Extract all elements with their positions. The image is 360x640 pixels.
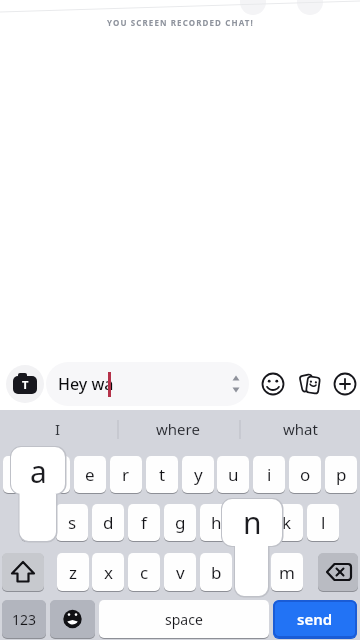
button[interactable]: i <box>253 456 285 493</box>
staticText: z <box>69 561 77 584</box>
button[interactable]: f <box>128 504 160 541</box>
button[interactable]: m <box>271 553 303 591</box>
button[interactable]: p <box>325 456 357 493</box>
button[interactable]: z <box>57 553 89 591</box>
staticText: I <box>55 419 61 439</box>
staticText: p <box>336 463 347 486</box>
button[interactable]: send <box>273 600 357 638</box>
staticText: what <box>283 419 318 439</box>
button[interactable]: g <box>164 504 196 541</box>
staticText: 123 <box>12 610 37 629</box>
staticText: j <box>249 511 254 534</box>
button[interactable]: d <box>92 504 124 541</box>
button[interactable]: what <box>250 412 350 446</box>
button[interactable] <box>331 370 359 398</box>
staticText: o <box>300 463 311 486</box>
button[interactable]: x <box>92 553 124 591</box>
button[interactable]: space <box>99 600 269 638</box>
button[interactable]: s <box>56 504 88 541</box>
staticText: n <box>243 502 262 543</box>
button[interactable]: q <box>3 456 35 493</box>
staticText: i <box>267 463 272 486</box>
staticText: Hey wa <box>58 373 114 395</box>
staticText: x <box>104 561 113 584</box>
staticText: t <box>159 463 166 486</box>
staticText: l <box>321 511 326 534</box>
button[interactable] <box>259 370 287 398</box>
button[interactable]: v <box>164 553 196 591</box>
button[interactable] <box>2 553 44 591</box>
button[interactable]: Hey wa <box>46 362 249 406</box>
staticText: f <box>141 511 147 534</box>
button[interactable]: c <box>128 553 160 591</box>
button[interactable]: h <box>200 504 232 541</box>
button[interactable]: u <box>217 456 249 493</box>
staticText: T <box>22 377 29 392</box>
button[interactable]: e <box>74 456 106 493</box>
button[interactable] <box>50 600 95 638</box>
staticText: y <box>194 463 203 486</box>
button[interactable]: 123 <box>2 600 46 638</box>
button[interactable]: r <box>110 456 142 493</box>
staticText: v <box>176 561 185 584</box>
staticText: where <box>156 419 200 439</box>
staticText: d <box>103 511 114 534</box>
button[interactable]: a <box>21 504 53 541</box>
staticText: k <box>282 511 292 534</box>
button[interactable]: o <box>289 456 321 493</box>
staticText: r <box>122 463 130 486</box>
staticText: e <box>85 463 95 486</box>
staticText: YOU SCREEN RECORDED CHAT! <box>107 17 254 28</box>
staticText: b <box>211 561 222 584</box>
button[interactable]: I <box>18 412 98 446</box>
staticText: m <box>279 561 295 584</box>
button[interactable]: j <box>235 504 267 541</box>
staticText: s <box>68 511 77 534</box>
button[interactable]: k <box>271 504 303 541</box>
button[interactable]: l <box>307 504 339 541</box>
staticText: h <box>211 511 222 534</box>
staticText: a <box>30 451 47 492</box>
button[interactable]: b <box>200 553 232 591</box>
button[interactable] <box>296 370 324 398</box>
staticText: u <box>228 463 239 486</box>
button[interactable]: w <box>38 456 70 493</box>
button[interactable]: t <box>146 456 178 493</box>
staticText: c <box>140 561 149 584</box>
staticText: send <box>297 609 333 629</box>
staticText: space <box>165 610 203 629</box>
staticText: g <box>175 511 186 534</box>
button[interactable]: T <box>6 365 44 403</box>
button[interactable]: where <box>128 412 228 446</box>
button[interactable] <box>318 553 358 591</box>
button[interactable]: y <box>182 456 214 493</box>
